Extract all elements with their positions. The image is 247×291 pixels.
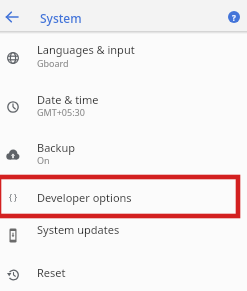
staticText: Reset [37,265,66,280]
staticText: Developer options [37,190,132,205]
button[interactable] [0,180,247,214]
button[interactable] [0,254,247,291]
button[interactable] [2,5,26,29]
button[interactable]: ? [228,11,240,23]
staticText: ? [232,12,236,23]
button[interactable] [0,136,247,176]
staticText: GMT+05:30 [37,106,85,118]
button[interactable] [0,38,247,78]
staticText: Date & time [37,92,99,107]
button[interactable] [0,88,247,128]
staticText: System [40,10,82,26]
button[interactable] [0,214,247,246]
staticText: { } [9,192,18,203]
staticText: Backup [37,140,76,155]
staticText: System updates [37,222,120,237]
staticText: Gboard [37,57,69,69]
staticText: Languages & input [37,42,135,57]
staticText: On [37,154,50,166]
